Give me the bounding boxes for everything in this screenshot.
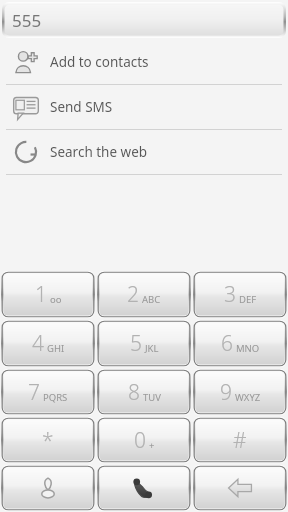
staticText: + bbox=[149, 439, 155, 452]
button[interactable]: 6 bbox=[193, 320, 287, 367]
staticText: 1 bbox=[35, 280, 47, 309]
button[interactable]: 5 bbox=[97, 320, 191, 367]
staticText: Send SMS bbox=[50, 98, 113, 116]
other: Add to contacts bbox=[12, 48, 40, 76]
button[interactable]: 8 bbox=[97, 369, 191, 415]
staticText: Search the web bbox=[50, 143, 148, 161]
staticText: 7 bbox=[28, 378, 40, 407]
other: Send SMS bbox=[12, 93, 40, 121]
button[interactable]: 7 bbox=[1, 369, 95, 415]
button[interactable]: Contacts bbox=[1, 465, 95, 511]
button[interactable]: 0 bbox=[97, 417, 191, 463]
staticText: 8 bbox=[128, 378, 140, 407]
staticText: 2 bbox=[127, 280, 139, 309]
button[interactable]: # bbox=[193, 417, 287, 463]
staticText: 9 bbox=[220, 378, 232, 407]
button[interactable]: * bbox=[1, 417, 95, 463]
staticText: JKL bbox=[145, 342, 159, 355]
button[interactable]: 1 bbox=[1, 271, 95, 318]
staticText: PQRS bbox=[43, 391, 68, 404]
staticText: * bbox=[42, 426, 54, 455]
button[interactable]: Backspace bbox=[193, 465, 287, 511]
staticText: 0 bbox=[134, 426, 146, 455]
staticText: WXYZ bbox=[235, 391, 261, 404]
staticText: 4 bbox=[32, 329, 44, 358]
staticText: oo bbox=[50, 293, 62, 306]
button[interactable]: Call bbox=[97, 465, 191, 511]
button[interactable]: 555 bbox=[2, 2, 286, 38]
staticText: Add to contacts bbox=[50, 53, 149, 71]
button[interactable]: Search the web bbox=[0, 130, 288, 174]
staticText: DEF bbox=[239, 293, 257, 306]
button[interactable]: 4 bbox=[1, 320, 95, 367]
button[interactable]: 2 bbox=[97, 271, 191, 318]
button[interactable]: 9 bbox=[193, 369, 287, 415]
button[interactable]: Send SMS bbox=[0, 85, 288, 129]
staticText: MNO bbox=[236, 342, 260, 355]
staticText: 555 bbox=[12, 9, 42, 32]
staticText: 3 bbox=[224, 280, 236, 309]
staticText: # bbox=[233, 426, 247, 455]
staticText: ABC bbox=[142, 293, 161, 306]
staticText: 5 bbox=[130, 329, 142, 358]
other: Search the web bbox=[12, 138, 40, 166]
button[interactable]: Add to contacts bbox=[0, 40, 288, 84]
staticText: TUV bbox=[143, 391, 161, 404]
button[interactable]: 3 bbox=[193, 271, 287, 318]
staticText: GHI bbox=[47, 342, 65, 355]
staticText: 6 bbox=[221, 329, 233, 358]
